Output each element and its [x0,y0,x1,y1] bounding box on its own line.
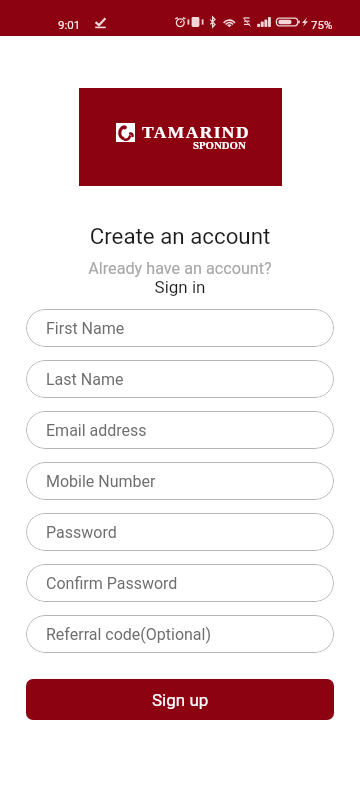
button[interactable]: Mobile Number [26,462,334,500]
staticText: TAMARIND [142,122,250,141]
staticText: Referral code(Optional) [46,625,212,644]
button[interactable]: Sign up [26,679,334,720]
button[interactable]: Sign in [0,277,360,297]
staticText: Mobile Number [46,472,156,491]
button[interactable]: Referral code(Optional) [26,615,334,653]
staticText: 75% [311,18,333,31]
staticText: Last Name [46,370,124,389]
button[interactable]: Confirm Password [26,564,334,602]
staticText: Already have an account? [0,259,360,278]
staticText: SPONDON [193,139,246,151]
staticText: Confirm Password [46,574,178,593]
staticText: Email address [46,421,147,440]
button[interactable]: Last Name [26,360,334,398]
button[interactable]: Email address [26,411,334,449]
staticText: Sign up [152,690,209,710]
staticText: Password [46,523,117,542]
staticText: First Name [46,319,125,338]
staticText: 9:01 [58,18,81,31]
button[interactable]: Password [26,513,334,551]
button[interactable]: First Name [26,309,334,347]
staticText: Create an account [0,223,360,249]
